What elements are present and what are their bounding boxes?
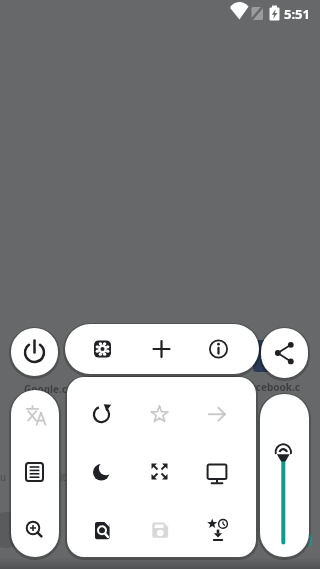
button[interactable] — [11, 450, 59, 494]
staticText: facebook.c — [246, 380, 300, 394]
button[interactable] — [137, 327, 185, 371]
button[interactable] — [136, 392, 182, 436]
button[interactable] — [65, 324, 259, 374]
staticText: u — [0, 470, 7, 484]
button[interactable] — [194, 392, 240, 436]
staticText: it — [60, 470, 67, 484]
button[interactable] — [194, 450, 240, 494]
button[interactable] — [264, 436, 305, 546]
button[interactable] — [11, 328, 58, 376]
button[interactable] — [260, 394, 309, 557]
button[interactable] — [136, 507, 182, 551]
button[interactable] — [261, 328, 308, 378]
button[interactable] — [78, 507, 124, 551]
button[interactable] — [261, 328, 308, 378]
staticText: Google.com — [24, 382, 83, 396]
staticText: 5:51 — [284, 5, 310, 23]
button[interactable] — [195, 327, 243, 371]
button[interactable] — [78, 450, 124, 494]
button[interactable] — [78, 327, 126, 371]
button[interactable] — [11, 328, 58, 376]
button[interactable] — [194, 507, 240, 551]
button[interactable] — [67, 377, 256, 557]
button[interactable] — [78, 392, 124, 436]
button[interactable] — [136, 450, 182, 494]
button[interactable] — [11, 508, 59, 552]
button[interactable] — [11, 390, 59, 557]
button[interactable] — [11, 394, 59, 438]
